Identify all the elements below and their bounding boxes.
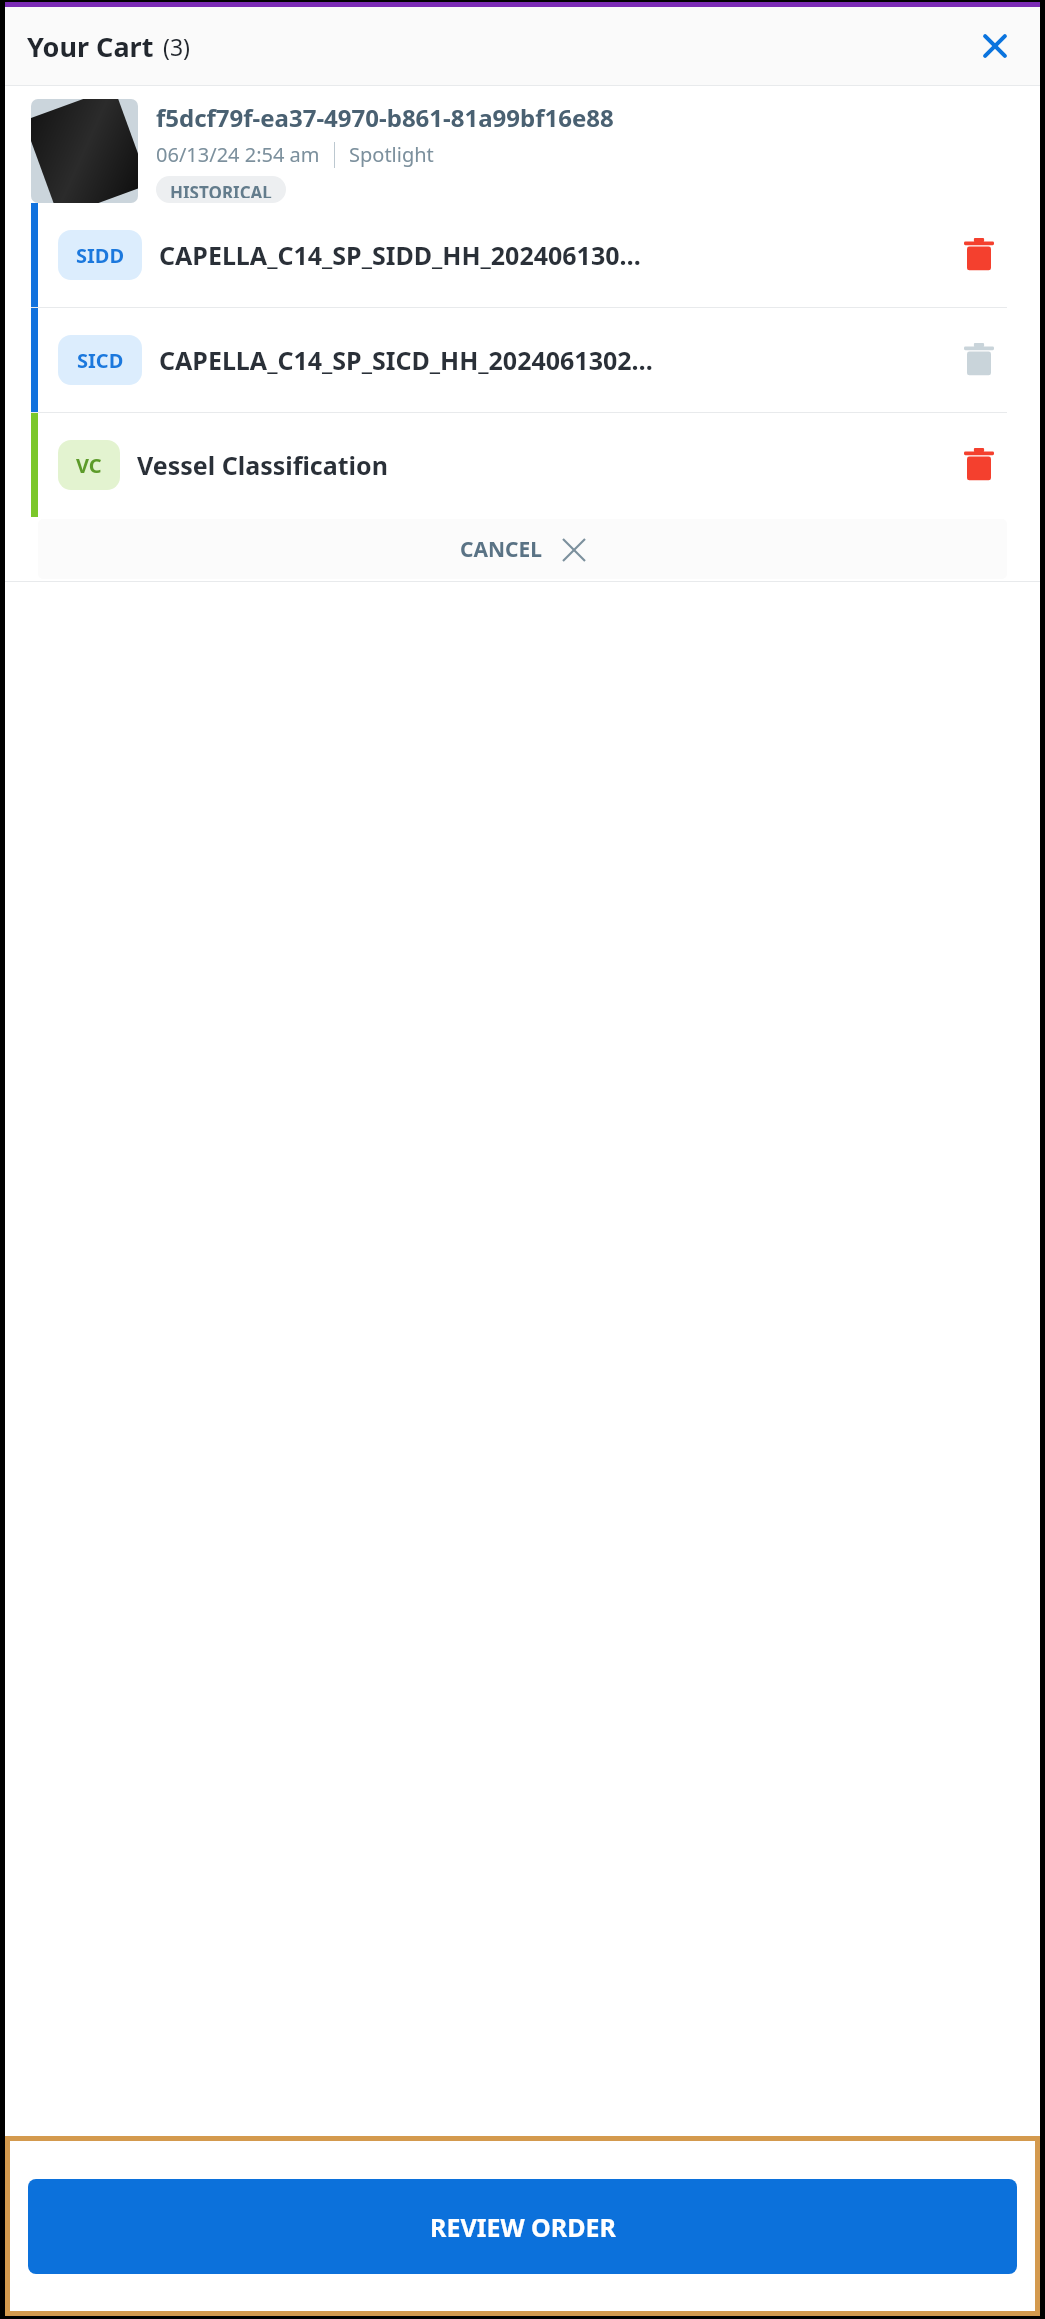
button[interactable]: Close [972, 23, 1018, 69]
button[interactable]: Delete [951, 332, 1007, 388]
staticText: VC [76, 452, 102, 479]
staticText: HISTORICAL [170, 181, 272, 198]
staticText: Spotlight [349, 141, 434, 168]
button[interactable]: Delete [951, 227, 1007, 283]
button[interactable]: CANCEL [38, 519, 1007, 579]
staticText: SICD [77, 347, 124, 374]
button[interactable]: Delete [951, 437, 1007, 493]
staticText: (3) [163, 31, 190, 62]
button[interactable]: VC [5, 413, 1040, 517]
staticText: REVIEW ORDER [430, 2210, 616, 2244]
button[interactable]: SICD [5, 308, 1040, 412]
staticText: CAPELLA_C14_SP_SICD_HH_2024061302… [159, 343, 939, 377]
button[interactable]: f5dcf79f-ea37-4970-b861-81a99bf16e88 [5, 86, 1040, 203]
staticText: CANCEL [460, 535, 543, 564]
staticText: Your Cart [27, 28, 154, 65]
button[interactable]: SIDD [5, 203, 1040, 307]
staticText: Vessel Classification [137, 448, 939, 482]
staticText: SIDD [76, 242, 125, 269]
staticText: f5dcf79f-ea37-4970-b861-81a99bf16e88 [156, 101, 614, 134]
staticText: 06/13/24 2:54 am [156, 141, 320, 168]
staticText: CAPELLA_C14_SP_SIDD_HH_202406130… [159, 238, 939, 272]
button[interactable]: REVIEW ORDER [28, 2179, 1017, 2274]
